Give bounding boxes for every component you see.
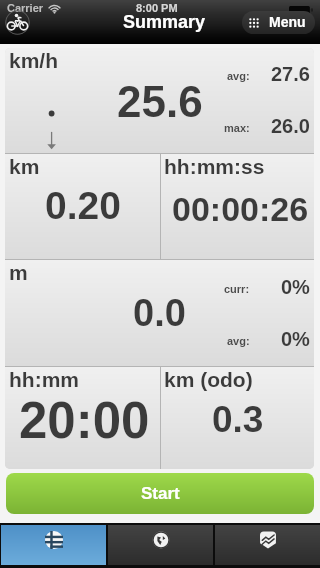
staticText: 0% <box>281 328 310 350</box>
button[interactable]: Map <box>108 525 213 565</box>
staticText: 27.6 <box>271 63 310 85</box>
staticText: m <box>9 261 28 284</box>
staticText: 26.0 <box>271 115 310 137</box>
staticText: hh:mm:ss <box>164 155 265 178</box>
staticText: km/h <box>9 49 59 72</box>
button[interactable]: Charts <box>215 525 320 565</box>
staticText: avg: <box>227 70 250 82</box>
staticText: km (odo) <box>164 368 253 391</box>
button[interactable]: Activity profile <box>5 10 30 35</box>
staticText: 00:00:26 <box>172 190 309 228</box>
staticText: 8:00 PM <box>136 2 178 14</box>
staticText: max: <box>224 122 250 134</box>
staticText: Summary <box>123 12 206 32</box>
button[interactable]: Menu <box>242 11 315 34</box>
staticText: 25.6 <box>117 77 203 126</box>
staticText: 20:00 <box>19 392 150 449</box>
staticText: 0.3 <box>212 399 264 440</box>
button[interactable]: Start <box>6 473 314 514</box>
staticText: 0.20 <box>45 184 121 228</box>
staticText: km <box>9 155 40 178</box>
staticText: 0% <box>281 276 310 298</box>
staticText: Start <box>141 484 180 503</box>
button[interactable]: Dashboard <box>1 525 106 565</box>
staticText: 0.0 <box>133 292 186 334</box>
staticText: Menu <box>269 14 306 30</box>
staticText: Carrier <box>7 2 44 14</box>
staticText: curr: <box>224 283 250 295</box>
staticText: avg: <box>227 335 250 347</box>
staticText: hh:mm <box>9 368 79 391</box>
